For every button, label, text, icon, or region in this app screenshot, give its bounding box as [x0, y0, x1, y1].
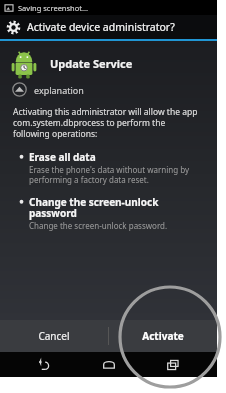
button[interactable]: Back: [24, 352, 64, 377]
other: Collapse explanation: [12, 82, 27, 97]
button[interactable]: Home: [89, 352, 129, 377]
staticText: explanation: [34, 84, 84, 96]
staticText: Activate: [142, 329, 184, 343]
staticText: Activate device administrator?: [27, 20, 175, 34]
staticText: Change the screen-unlock password.: [29, 220, 168, 231]
staticText: Activating this administrator will allow…: [13, 106, 203, 139]
staticText: Cancel: [38, 329, 70, 343]
staticText: Erase the phone's data without warning b…: [29, 164, 201, 185]
staticText: Change the screen-unlock password: [29, 195, 201, 220]
button[interactable]: Collapse explanation: [12, 82, 84, 97]
staticText: Erase all data: [29, 150, 96, 164]
staticText: Saving screenshot...: [18, 3, 89, 13]
button[interactable]: Activate: [109, 320, 217, 352]
button[interactable]: Cancel: [0, 320, 108, 352]
button[interactable]: Recent apps: [153, 352, 193, 377]
staticText: Update Service: [50, 56, 133, 71]
